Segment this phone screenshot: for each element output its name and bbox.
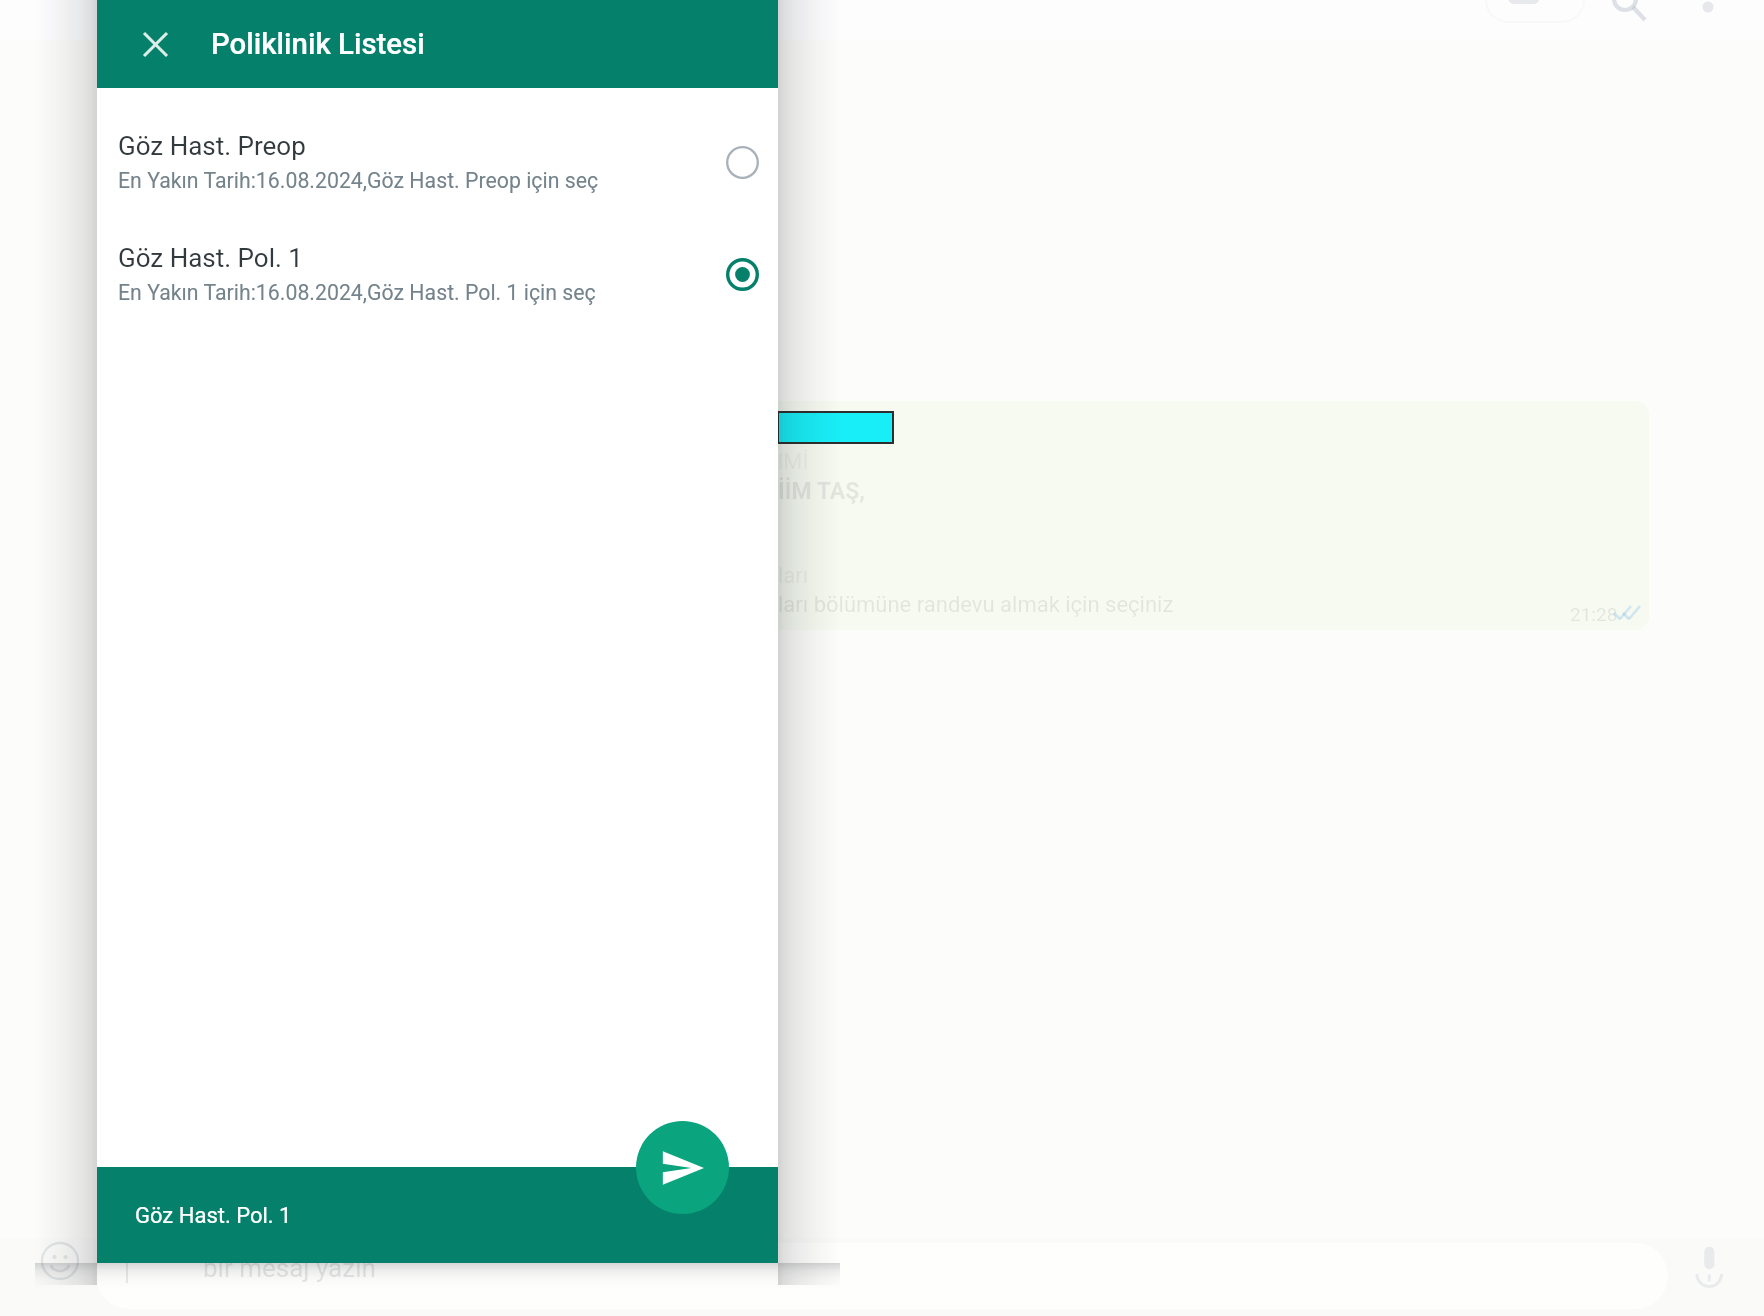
button[interactable]: Göz Hast. Pol. 1 [97, 231, 778, 317]
staticText: ları bölümüne randevu almak için seçiniz [778, 592, 1174, 618]
staticText: İİM TAŞ, [778, 478, 866, 505]
button[interactable]: Kapat [133, 22, 177, 66]
staticText: Göz Hast. Pol. 1 [135, 1203, 292, 1229]
button[interactable]: Gönder [636, 1121, 729, 1214]
staticText: Göz Hast. Pol. 1 [118, 243, 303, 273]
button[interactable]: Göz Hast. Preop [97, 119, 778, 205]
staticText: 21:28 [1570, 603, 1618, 625]
staticText: bir mesaj yazın [203, 1253, 376, 1283]
staticText: Göz Hast. Preop [118, 131, 306, 161]
staticText: Poliklinik Listesi [211, 27, 425, 61]
staticText: lMİ [778, 449, 809, 475]
staticText: En Yakın Tarih:16.08.2024,Göz Hast. Preo… [118, 168, 599, 193]
staticText: En Yakın Tarih:16.08.2024,Göz Hast. Pol.… [118, 280, 596, 305]
staticText: ları [778, 563, 809, 589]
